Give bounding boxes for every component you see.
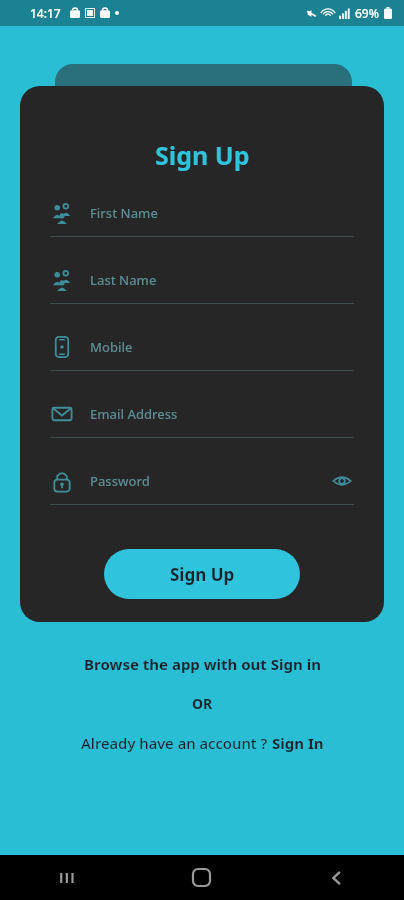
button[interactable]: Browse the app with out Sign in xyxy=(76,650,329,678)
staticText: OR xyxy=(192,694,213,713)
button[interactable]: Sign Up xyxy=(104,549,300,599)
staticText: 14:17 xyxy=(30,5,61,21)
button[interactable]: Password xyxy=(20,458,384,525)
button[interactable]: Home xyxy=(134,855,269,900)
staticText: Sign Up xyxy=(170,563,235,586)
button[interactable]: Recents xyxy=(0,855,134,900)
staticText: Last Name xyxy=(90,271,157,289)
staticText: Sign Up xyxy=(155,138,250,172)
staticText: Email Address xyxy=(90,405,178,423)
button[interactable]: Last Name xyxy=(20,257,384,324)
staticText: Mobile xyxy=(90,338,133,356)
staticText: Sign In xyxy=(272,733,324,753)
button[interactable]: Show password xyxy=(330,469,354,493)
staticText: Already have an account ? xyxy=(81,733,272,753)
staticText: 69% xyxy=(355,5,379,21)
staticText: Password xyxy=(90,472,150,490)
button[interactable]: First Name xyxy=(20,190,384,257)
button[interactable]: Already have an account ? xyxy=(73,729,332,757)
staticText: Browse the app with out Sign in xyxy=(84,654,321,674)
button[interactable]: Mobile xyxy=(20,324,384,391)
staticText: First Name xyxy=(90,204,158,222)
button[interactable]: Email Address xyxy=(20,391,384,458)
button[interactable]: Back xyxy=(269,855,404,900)
